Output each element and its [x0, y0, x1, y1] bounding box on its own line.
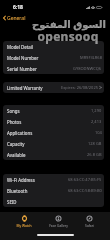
- staticText: Expires: 26/08/2025: [61, 85, 98, 90]
- button[interactable]: Bluetooth: [3, 185, 104, 196]
- staticText: Safari: [85, 223, 94, 227]
- button[interactable]: Photos: [3, 116, 104, 127]
- staticText: Wi-Fi Address: [7, 177, 35, 183]
- button[interactable]: Songs: [3, 105, 104, 116]
- staticText: 104: [95, 130, 102, 135]
- button[interactable]: Capacity: [3, 138, 104, 149]
- staticText: Songs: [7, 108, 20, 114]
- staticText: General: [7, 15, 26, 21]
- staticText: 6:18: [13, 4, 23, 11]
- button[interactable]: Model Detail: [3, 41, 104, 52]
- staticText: Applications: [7, 130, 33, 136]
- button[interactable]: Serial Number: [3, 63, 104, 74]
- staticText: Bluetooth: [7, 188, 28, 194]
- button[interactable]: Model Number: [3, 52, 104, 63]
- staticText: Photos: [7, 119, 22, 125]
- staticText: MR9F3LR68: [80, 55, 102, 60]
- staticText: 68:63:CC:47:B5:F5: [68, 177, 102, 182]
- button[interactable]: Limited Warranty: [3, 82, 104, 93]
- staticText: opensooq: [37, 28, 99, 44]
- button[interactable]: SEID: [3, 196, 104, 207]
- button[interactable]: Wi-Fi Address: [3, 174, 104, 185]
- button[interactable]: Face Gallery: [48, 215, 69, 227]
- staticText: Limited Warranty: [7, 85, 43, 91]
- button[interactable]: Available: [3, 149, 104, 160]
- staticText: GY8ODNWCQ6: [73, 66, 102, 71]
- staticText: Capacity: [7, 141, 25, 147]
- button[interactable]: My Watch: [15, 215, 33, 227]
- staticText: 1,290: [91, 108, 102, 113]
- staticText: 2,413: [91, 119, 102, 124]
- staticText: 68:63:CC:58:B9:B0: [68, 188, 102, 193]
- staticText: Model Detail: [7, 44, 34, 50]
- staticText: My Watch: [16, 223, 32, 227]
- staticText: Available: [7, 152, 26, 158]
- staticText: Face Gallery: [49, 223, 68, 227]
- staticText: 128 GB: [88, 141, 102, 146]
- button[interactable]: General: [2, 14, 27, 22]
- staticText: SEID: [7, 199, 17, 205]
- staticText: Serial Number: [7, 66, 37, 72]
- button[interactable]: Applications: [3, 127, 104, 138]
- staticText: السوق المفتوح: [32, 17, 106, 31]
- button[interactable]: Safari: [84, 215, 95, 227]
- staticText: 26.8 GB: [87, 152, 102, 157]
- staticText: Model Number: [7, 55, 39, 61]
